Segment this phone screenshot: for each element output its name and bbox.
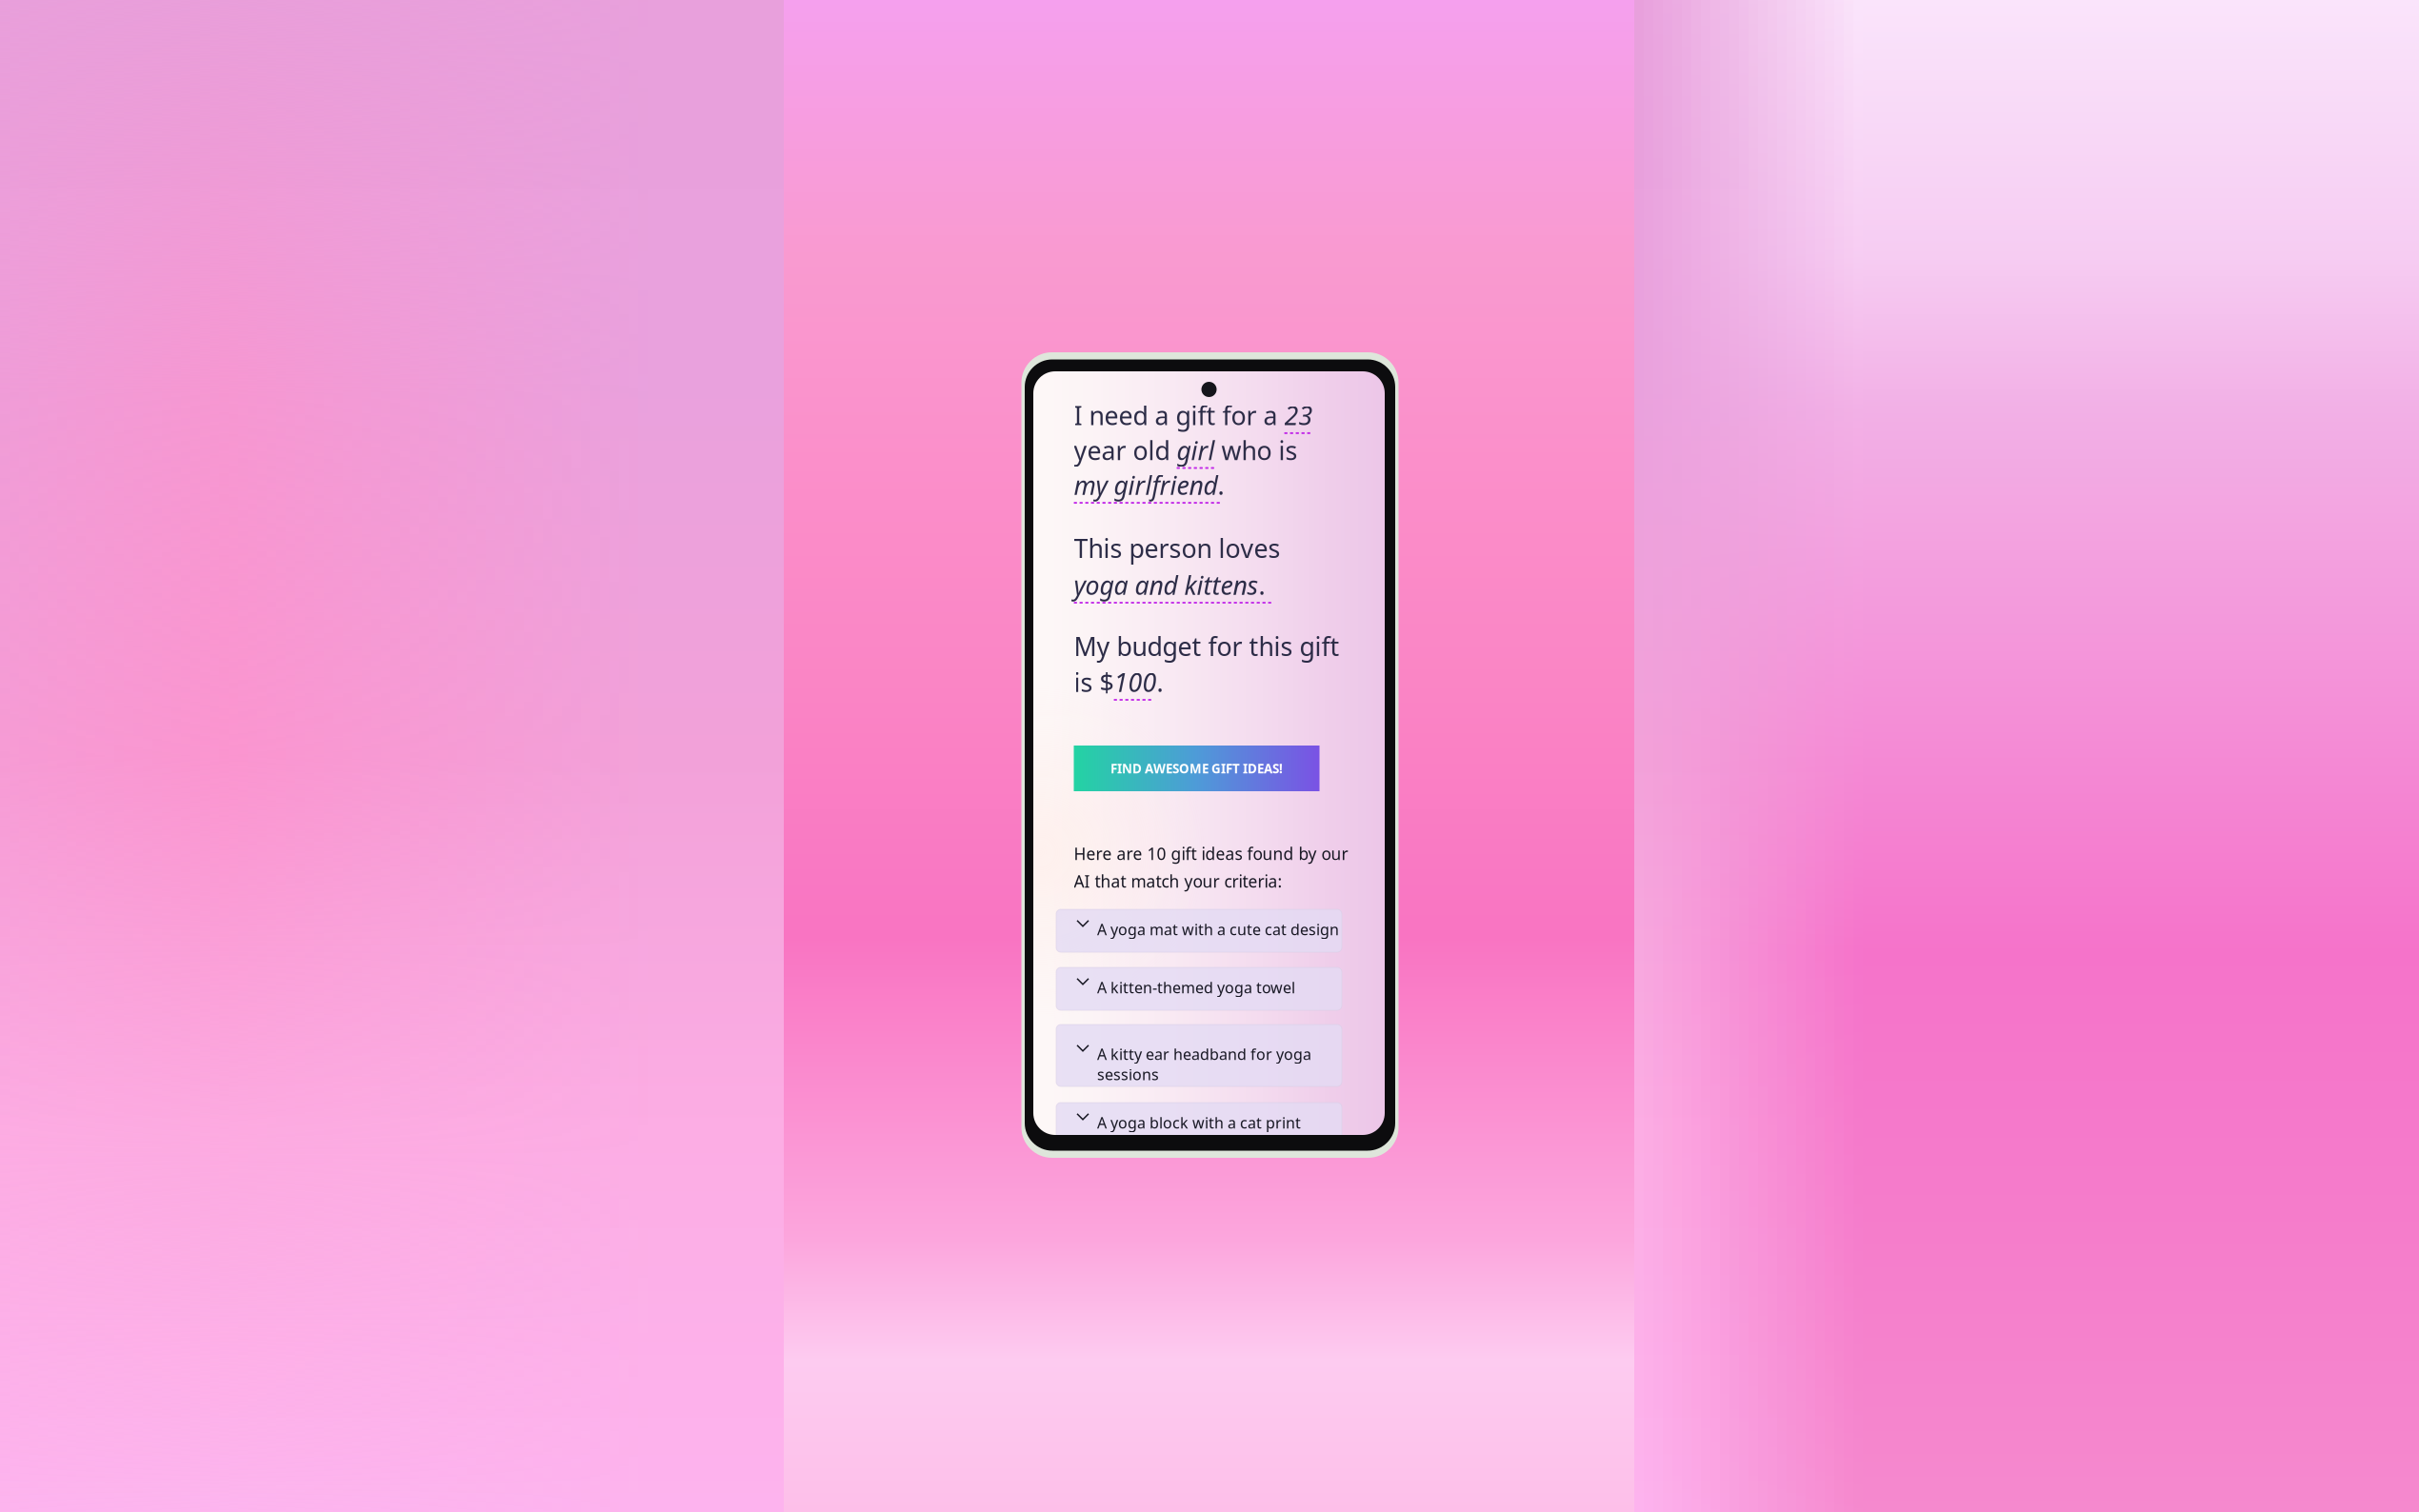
staticText: 23 [1284,398,1313,432]
staticText: AI that match your criteria: [1074,870,1282,892]
staticText: who is [1215,433,1298,467]
staticText: girl [1177,433,1215,467]
staticText: Here are 10 gift ideas found by our [1074,843,1348,865]
staticText: A yoga block with a cat print [1097,1113,1301,1133]
staticText: FIND AWESOME GIFT IDEAS! [1110,760,1283,777]
staticText: yoga and kittens [1074,568,1259,602]
staticText: . [1157,665,1163,699]
staticText: A yoga mat with a cute cat design [1097,919,1339,939]
staticText: My budget for this gift [1074,629,1339,663]
staticText: A kitty ear headband for yoga sessions [1097,1044,1311,1084]
staticText: is $ [1074,665,1114,699]
button[interactable]: A kitty ear headband for yoga sessions [1056,1025,1342,1086]
staticText: I need a gift for a [1074,398,1284,432]
staticText: my girlfriend [1074,468,1218,502]
button[interactable]: A yoga block with a cat print [1056,1103,1342,1145]
staticText: year old [1074,433,1177,467]
button[interactable]: FIND AWESOME GIFT IDEAS! [1074,746,1319,791]
staticText: . [1259,568,1265,602]
button[interactable]: A kitten-themed yoga towel [1056,967,1342,1010]
staticText: . [1218,468,1224,502]
button[interactable]: A yoga mat with a cute cat design [1056,909,1342,952]
staticText: 100 [1114,665,1157,699]
staticText: A kitten-themed yoga towel [1097,977,1295,998]
staticText: This person loves [1074,531,1280,565]
